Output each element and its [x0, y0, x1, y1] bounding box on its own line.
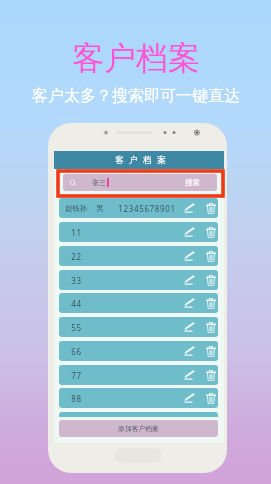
button[interactable]: 55 [59, 317, 218, 337]
staticText: 客户太多？搜索即可一键直达 [32, 86, 240, 106]
button[interactable]: 赵钱孙 [59, 198, 218, 218]
staticText: 44 [71, 298, 82, 309]
staticText: 男 [96, 204, 104, 213]
button[interactable]: Delete [204, 272, 217, 288]
staticText: 赵钱孙 [65, 204, 87, 213]
button[interactable]: Edit [183, 272, 196, 288]
staticText: 12345678901 [118, 203, 176, 214]
button[interactable]: 11 [59, 222, 218, 242]
button[interactable]: 88 [59, 388, 218, 408]
button[interactable]: Edit [183, 224, 196, 240]
button[interactable]: 添加客户档案 [59, 420, 218, 437]
staticText: 张三 [92, 178, 106, 187]
button[interactable]: Delete [204, 319, 217, 335]
button[interactable]: 22 [59, 246, 218, 266]
button[interactable]: Edit [183, 200, 196, 216]
staticText: 搜索 [185, 178, 200, 187]
staticText: 88 [71, 393, 82, 404]
button[interactable]: Delete [204, 390, 217, 406]
button[interactable]: Edit [183, 248, 196, 264]
button[interactable]: Delete [204, 224, 217, 240]
button[interactable]: Delete [204, 248, 217, 264]
button[interactable]: Edit [183, 295, 196, 311]
button[interactable]: Delete [204, 367, 217, 383]
staticText: 66 [71, 346, 82, 357]
staticText: 添加客户档案 [118, 424, 159, 433]
button[interactable]: 客户档案 [54, 151, 224, 169]
staticText: 55 [71, 322, 82, 333]
button[interactable]: Edit [183, 343, 196, 359]
button[interactable]: Edit [183, 390, 196, 406]
staticText: 客户档案 [115, 155, 171, 166]
staticText: 11 [71, 227, 82, 238]
button[interactable]: Delete [204, 200, 217, 216]
button[interactable]: 44 [59, 293, 218, 313]
button[interactable]: Delete [204, 343, 217, 359]
button[interactable]: 77 [59, 365, 218, 385]
button[interactable]: 33 [59, 270, 218, 290]
button[interactable]: 张三 [63, 174, 217, 191]
staticText: 33 [71, 275, 82, 286]
staticText: 77 [71, 370, 82, 381]
button[interactable]: Delete [204, 295, 217, 311]
staticText: 22 [71, 251, 82, 262]
button[interactable]: 66 [59, 341, 218, 361]
button[interactable]: Edit [183, 367, 196, 383]
staticText: 客户档案 [72, 38, 200, 78]
button[interactable]: Edit [183, 319, 196, 335]
